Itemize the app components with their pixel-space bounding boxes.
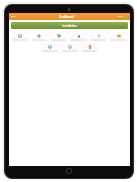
staticText: 9:41 [11,15,16,18]
button[interactable]: Sched [90,33,107,41]
button[interactable]: Support [81,44,98,52]
staticText: Dashboard [59,15,74,19]
button[interactable]: Survey [50,33,67,41]
button[interactable]: 9:41 [9,13,130,20]
button[interactable]: Quality [61,44,78,52]
staticText: 100% [117,15,123,18]
button[interactable]: Work [41,44,58,52]
button[interactable]: Add [31,33,47,41]
button[interactable]: Equip [70,33,87,41]
button[interactable]: Customer [12,33,28,41]
button[interactable]: Done [110,33,127,41]
staticText: Installation [62,24,77,28]
button[interactable]: Installation [11,22,128,29]
